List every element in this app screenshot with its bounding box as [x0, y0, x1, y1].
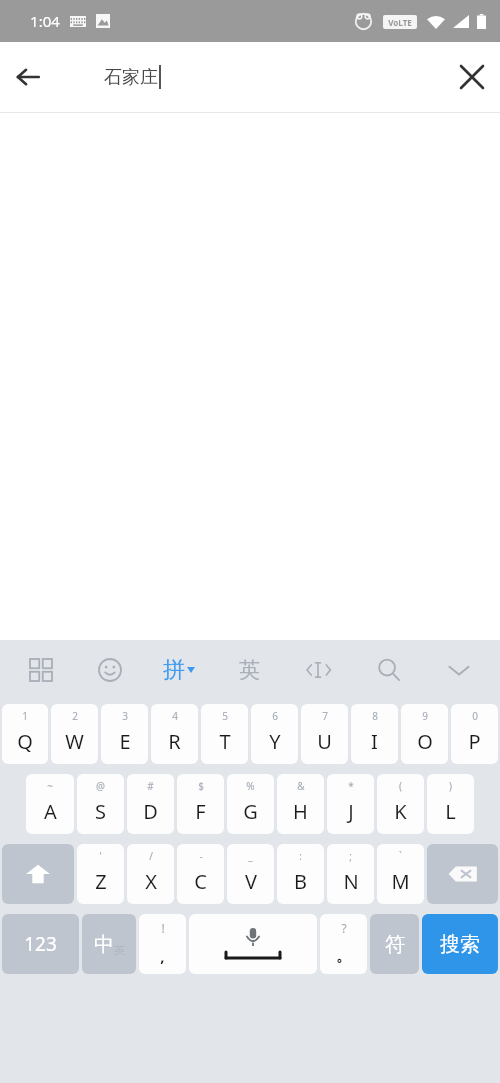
staticText: # — [147, 779, 154, 793]
staticText: 1 — [22, 709, 28, 723]
button[interactable]: 2 — [51, 704, 98, 764]
staticText: 0 — [472, 709, 478, 723]
button[interactable]: Clear — [444, 49, 500, 105]
button[interactable]: _ — [227, 844, 274, 904]
button[interactable]: ~ — [26, 774, 74, 834]
button[interactable]: @ — [77, 774, 124, 834]
button[interactable]: 4 — [151, 704, 198, 764]
staticText: B — [294, 868, 307, 895]
staticText: T — [219, 728, 231, 755]
staticText: ` — [399, 849, 402, 863]
button[interactable]: ; — [327, 844, 374, 904]
button[interactable]: 9 — [401, 704, 448, 764]
staticText: 拼 — [163, 656, 185, 684]
button[interactable]: 拼 — [144, 640, 214, 700]
staticText: VoLTE — [388, 17, 412, 28]
button[interactable]: $ — [177, 774, 224, 834]
staticText: 英 — [114, 943, 125, 957]
staticText: Z — [95, 868, 107, 895]
staticText: R — [168, 728, 181, 755]
staticText: 4 — [172, 709, 178, 723]
button[interactable]: 0 — [451, 704, 498, 764]
staticText: 石家庄 — [104, 66, 158, 89]
staticText: ? — [341, 920, 347, 936]
staticText: 中 — [94, 932, 114, 957]
staticText: @ — [96, 779, 105, 793]
button[interactable]: Back — [0, 49, 56, 105]
button[interactable]: - — [177, 844, 224, 904]
staticText: V — [245, 868, 257, 895]
button[interactable]: ` — [377, 844, 424, 904]
staticText: J — [348, 798, 354, 825]
button[interactable]: Shift — [2, 844, 74, 904]
button[interactable]: Hide keyboard — [424, 640, 494, 700]
button[interactable]: 6 — [251, 704, 298, 764]
button[interactable]: & — [277, 774, 324, 834]
button[interactable]: # — [127, 774, 174, 834]
staticText: & — [297, 779, 305, 793]
button[interactable]: 符 — [370, 914, 419, 974]
staticText: _ — [248, 849, 253, 863]
staticText: S — [95, 798, 106, 825]
staticText: ) — [449, 779, 452, 793]
button[interactable]: Search — [354, 640, 424, 700]
staticText: U — [317, 728, 332, 755]
button[interactable]: Grid — [6, 640, 75, 700]
button[interactable]: 搜索 — [422, 914, 498, 974]
staticText: 。 — [336, 947, 351, 966]
staticText: O — [417, 728, 433, 755]
staticText: N — [343, 868, 359, 895]
button[interactable]: ) — [427, 774, 474, 834]
staticText: I — [371, 728, 378, 755]
staticText: ; — [349, 849, 352, 863]
staticText: / — [149, 849, 153, 863]
staticText: 搜索 — [440, 932, 480, 957]
button[interactable]: ! — [139, 914, 186, 974]
staticText: , — [160, 946, 165, 966]
staticText: 5 — [222, 709, 228, 723]
button[interactable]: ? — [320, 914, 367, 974]
staticText: - — [199, 849, 203, 863]
staticText: : — [299, 849, 302, 863]
button[interactable]: 8 — [351, 704, 398, 764]
staticText: $ — [198, 779, 204, 793]
staticText: % — [246, 779, 255, 793]
button[interactable]: 7 — [301, 704, 348, 764]
button[interactable]: 1 — [2, 704, 48, 764]
button[interactable]: : — [277, 844, 324, 904]
button[interactable]: Space — [189, 914, 317, 974]
staticText: ! — [161, 920, 165, 936]
button[interactable]: 英 — [214, 640, 284, 700]
button[interactable]: % — [227, 774, 274, 834]
staticText: * — [348, 779, 354, 793]
staticText: E — [119, 728, 131, 755]
staticText: L — [445, 798, 456, 825]
staticText: 6 — [272, 709, 278, 723]
staticText: F — [195, 798, 206, 825]
button[interactable]: ' — [77, 844, 124, 904]
staticText: A — [44, 798, 57, 825]
button[interactable]: Cursor — [284, 640, 354, 700]
staticText: P — [468, 728, 481, 755]
staticText: ~ — [47, 779, 53, 793]
button[interactable]: 中 — [82, 914, 136, 974]
button[interactable]: Emoji — [75, 640, 144, 700]
button[interactable]: 123 — [2, 914, 79, 974]
button[interactable]: 3 — [101, 704, 148, 764]
button[interactable]: 5 — [201, 704, 248, 764]
staticText: D — [143, 798, 158, 825]
button[interactable]: ( — [377, 774, 424, 834]
staticText: 符 — [385, 932, 405, 957]
staticText: M — [391, 868, 410, 895]
staticText: 7 — [322, 709, 328, 723]
staticText: Y — [269, 728, 281, 755]
staticText: H — [293, 798, 308, 825]
staticText: C — [194, 868, 207, 895]
button[interactable]: Backspace — [427, 844, 498, 904]
button[interactable]: / — [127, 844, 174, 904]
staticText: W — [65, 728, 84, 755]
staticText: X — [145, 868, 157, 895]
staticText: Q — [17, 728, 33, 755]
button[interactable]: * — [327, 774, 374, 834]
staticText: 3 — [122, 709, 128, 723]
